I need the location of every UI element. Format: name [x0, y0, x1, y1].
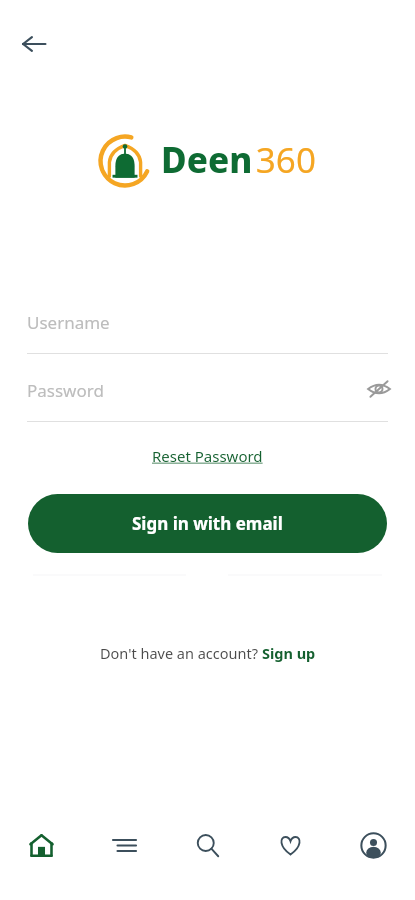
- button[interactable]: Password: [0, 364, 415, 422]
- staticText: Sign up: [262, 643, 316, 663]
- staticText: Deen 360: [161, 136, 316, 184]
- button[interactable]: Back: [12, 22, 56, 66]
- button[interactable]: Search: [166, 814, 249, 876]
- button[interactable]: Show password: [361, 371, 397, 407]
- button[interactable]: Username: [0, 296, 415, 354]
- button[interactable]: Sign in with email: [28, 494, 387, 553]
- staticText: Password: [27, 379, 104, 402]
- button[interactable]: Favourites: [249, 814, 332, 876]
- staticText: Reset Password: [152, 446, 263, 466]
- button[interactable]: Menu: [83, 814, 166, 876]
- staticText: Username: [27, 311, 110, 334]
- button[interactable]: Reset Password: [144, 443, 271, 469]
- button[interactable]: Account: [332, 814, 415, 876]
- staticText: Don't have an account?: [100, 643, 262, 663]
- staticText: Sign in with email: [132, 512, 283, 535]
- button[interactable]: Sign up: [262, 643, 316, 663]
- button[interactable]: Home: [0, 814, 83, 876]
